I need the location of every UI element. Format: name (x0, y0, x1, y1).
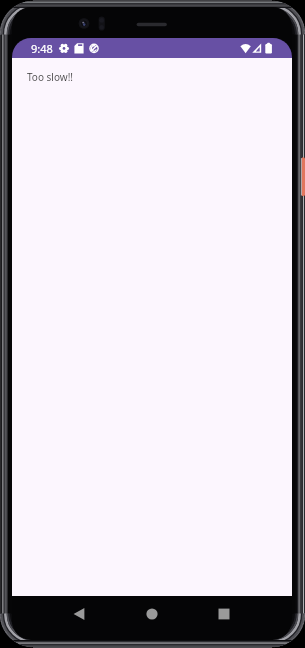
button[interactable]: Recent apps (203, 596, 245, 632)
staticText: 9:48 (31, 41, 53, 56)
staticText: Too slow!! (27, 70, 74, 84)
button[interactable]: Home (131, 596, 173, 632)
button[interactable]: Back (58, 596, 100, 632)
